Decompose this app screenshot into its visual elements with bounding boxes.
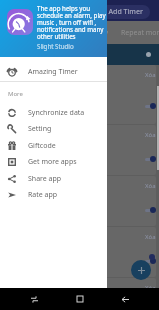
button[interactable]: Ready: [78, 21, 118, 44]
staticText: Setting: [28, 124, 52, 134]
staticText: Xóa: [145, 284, 156, 292]
staticText: 06:00: [7, 70, 41, 88]
staticText: Ready: [88, 28, 109, 38]
staticText: + Add Timer: [99, 7, 143, 17]
button[interactable]: Get more apps: [0, 153, 107, 170]
button[interactable]: Xóa: [144, 70, 156, 80]
button[interactable]: Repeat monthly: [121, 21, 159, 44]
button[interactable]: Back: [114, 288, 136, 310]
staticText: Slight Studio: [37, 42, 74, 50]
button[interactable]: Enable timer: [145, 258, 156, 264]
button[interactable]: 07:30: [2, 125, 156, 175]
button[interactable]: Xóa: [144, 181, 156, 191]
staticText: Share app: [28, 174, 62, 184]
staticText: Giftcode: [28, 141, 56, 151]
staticText: Synchronize data: [28, 108, 85, 118]
button[interactable]: Home: [69, 288, 91, 310]
button[interactable]: 07:00: [2, 278, 156, 310]
staticText: Xóa: [145, 182, 156, 190]
staticText: Xóa: [145, 233, 156, 241]
button[interactable]: Giftcode: [0, 137, 107, 154]
staticText: 07:00: [7, 283, 41, 301]
button[interactable]: More options: [149, 254, 155, 260]
button[interactable]: Amazing Timer: [0, 63, 107, 80]
staticText: Repeat monthly: [121, 28, 159, 38]
button[interactable]: Add timer: [131, 260, 151, 280]
button[interactable]: Enable timer: [145, 207, 156, 213]
button[interactable]: Rate app: [0, 186, 107, 203]
staticText: Rate app: [28, 190, 58, 200]
staticText: Xóa: [145, 131, 156, 139]
button[interactable]: Enable timer: [145, 103, 156, 109]
staticText: 12:00: [7, 181, 41, 199]
button[interactable]: 22:15: [2, 227, 156, 277]
staticText: Xóa: [145, 71, 156, 79]
button[interactable]: Xóa: [144, 232, 156, 242]
button[interactable]: Xóa: [144, 283, 156, 293]
staticText: 07:30: [7, 130, 41, 148]
button[interactable]: Share app: [0, 170, 107, 187]
button[interactable]: + Add Timer: [91, 5, 150, 19]
button[interactable]: Info: [146, 52, 151, 57]
button[interactable]: Recents: [23, 288, 45, 310]
staticText: Một lần duy nhất (hôm nay): [7, 149, 55, 164]
button[interactable]: Xóa: [144, 130, 156, 140]
button[interactable]: Setting: [0, 120, 107, 137]
button[interactable]: Enable timer: [145, 156, 156, 162]
button[interactable]: 12:00: [2, 176, 156, 226]
staticText: More: [8, 90, 23, 98]
button[interactable]: 06:00: [2, 65, 156, 124]
staticText: Thứ 2, Thứ 3, Thứ 4 (hằng tuần): [7, 89, 62, 104]
staticText: Amazing Timer: [28, 67, 78, 77]
staticText: Get more apps: [28, 157, 77, 167]
staticText: Báo thức: [7, 302, 33, 310]
button[interactable]: Synchronize data: [0, 104, 107, 121]
staticText: The app helps you schedule an alarm, pla…: [37, 4, 106, 40]
